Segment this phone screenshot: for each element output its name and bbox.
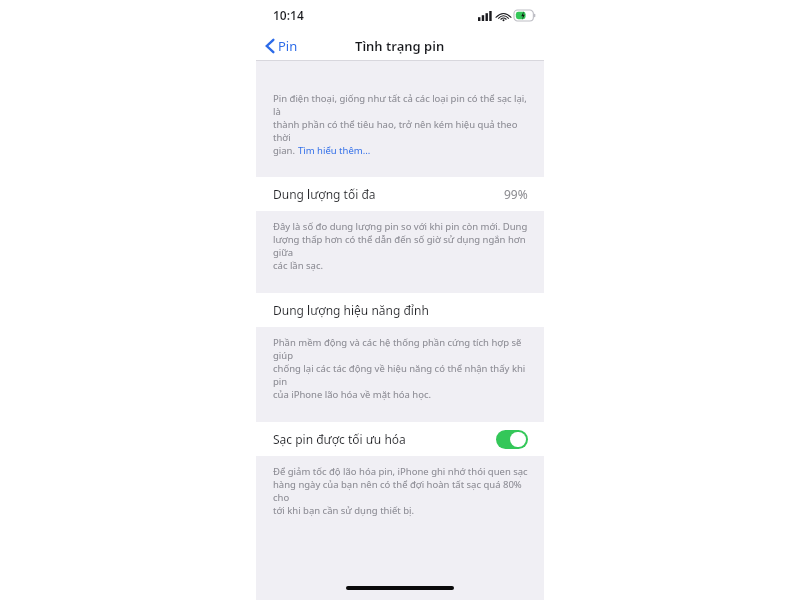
staticText: Đây là số đo dung lượng pin so với khi p… (273, 220, 528, 233)
staticText: 99% (504, 186, 528, 202)
staticText: tới khi bạn cần sử dụng thiết bị. (273, 504, 414, 517)
button[interactable]: Dung lượng hiệu năng đỉnh (256, 293, 544, 327)
button[interactable]: Sạc pin được tối ưu hóa (256, 422, 544, 456)
staticText: chống lại các tác động về hiệu năng có t… (273, 362, 528, 388)
staticText: hàng ngày của bạn nên có thể đợi hoàn tấ… (273, 478, 528, 504)
button[interactable]: Sạc pin được tối ưu hóa (496, 430, 528, 449)
staticText: của iPhone lão hóa về mặt hóa học. (273, 388, 432, 401)
staticText: Tình trạng pin (355, 37, 445, 55)
staticText: gian. (273, 144, 298, 157)
staticText: Pin (278, 37, 298, 55)
staticText: Sạc pin được tối ưu hóa (273, 431, 496, 447)
button[interactable]: Tìm hiểu thêm... (298, 144, 371, 157)
staticText: Pin điện thoại, giống như tất cả các loạ… (273, 92, 528, 118)
staticText: thành phần có thể tiêu hao, trở nên kém … (273, 118, 528, 144)
staticText: các lần sạc. (273, 259, 324, 272)
button[interactable]: Pin (256, 33, 308, 59)
staticText: Dung lượng hiệu năng đỉnh (273, 302, 528, 318)
staticText: Để giảm tốc độ lão hóa pin, iPhone ghi n… (273, 465, 528, 478)
staticText: 10:14 (273, 7, 304, 23)
button[interactable]: Dung lượng tối đa (256, 177, 544, 211)
staticText: lượng thấp hơn có thể dẫn đến số giờ sử … (273, 233, 528, 259)
staticText: Phần mềm động và các hệ thống phần cứng … (273, 336, 528, 362)
staticText: Dung lượng tối đa (273, 186, 504, 202)
